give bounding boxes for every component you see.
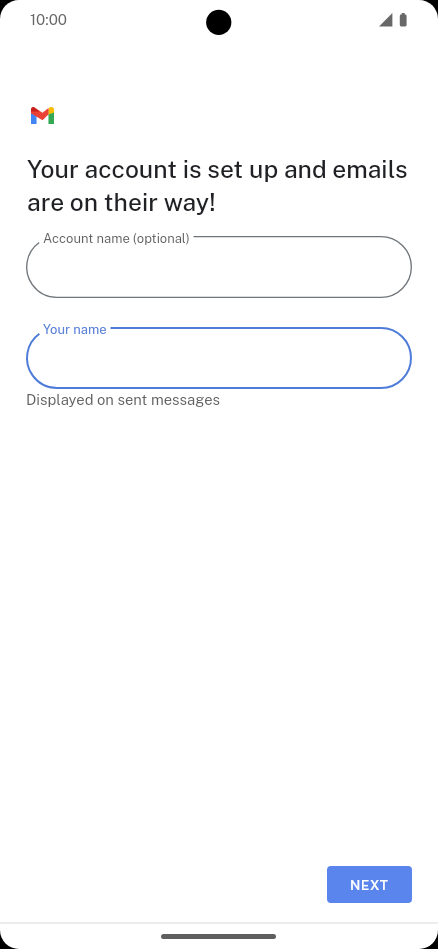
staticText: 10:00 bbox=[30, 11, 67, 29]
button[interactable]: Account name (optional) bbox=[26, 236, 412, 298]
staticText: Your name bbox=[43, 322, 107, 337]
button[interactable]: NEXT bbox=[327, 866, 412, 903]
staticText: Account name (optional) bbox=[43, 231, 190, 246]
staticText: Your account is set up and emails are on… bbox=[27, 155, 412, 217]
staticText: NEXT bbox=[350, 877, 389, 893]
staticText: Displayed on sent messages bbox=[26, 391, 220, 408]
button[interactable]: Your name bbox=[26, 327, 412, 389]
